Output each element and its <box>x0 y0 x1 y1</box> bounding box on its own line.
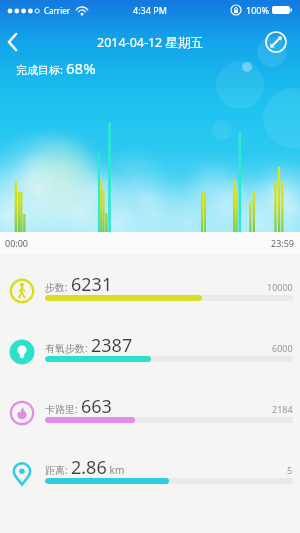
button[interactable]: 步数: <box>0 254 300 315</box>
staticText: 完成目标: <box>16 62 66 77</box>
staticText: 100% <box>246 4 269 16</box>
staticText: 卡路里: <box>45 402 78 416</box>
staticText: 5 <box>287 464 293 476</box>
staticText: 6231 <box>71 272 113 297</box>
staticText: 663 <box>81 394 112 419</box>
staticText: 6000 <box>272 342 293 354</box>
staticText: 步数: <box>45 280 68 294</box>
staticText: 2.86 <box>71 455 107 480</box>
staticText: 2014-04-12 星期五 <box>97 34 204 51</box>
staticText: 有氧步数: <box>45 341 88 355</box>
staticText: 4:34 PM <box>133 4 167 16</box>
staticText: Carrier <box>44 5 71 16</box>
staticText: 距离: <box>45 463 68 477</box>
button[interactable]: 有氧步数: <box>0 315 300 376</box>
button[interactable]: 距离: <box>0 437 300 498</box>
staticText: 2387 <box>91 333 133 358</box>
staticText: 23:59 <box>271 237 295 249</box>
staticText: km <box>107 463 125 477</box>
staticText: 68% <box>66 58 96 78</box>
staticText: 10000 <box>267 281 293 293</box>
button[interactable]: 卡路里: <box>0 376 300 437</box>
button[interactable] <box>264 30 288 54</box>
button[interactable] <box>0 28 28 56</box>
staticText: 2184 <box>272 403 293 415</box>
staticText: 00:00 <box>5 237 29 249</box>
